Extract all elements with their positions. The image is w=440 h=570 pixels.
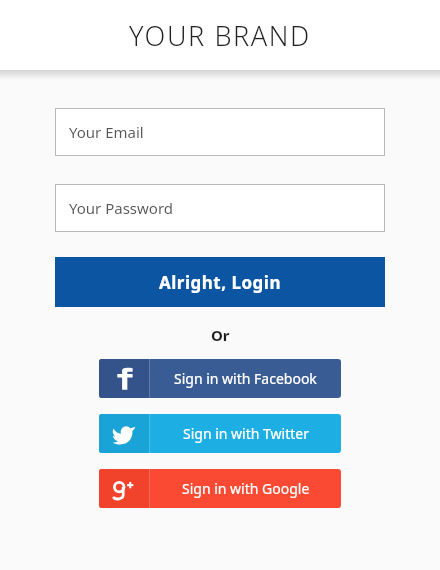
staticText: YOUR BRAND: [129, 17, 311, 54]
staticText: Sign in with Google: [182, 479, 310, 498]
button[interactable]: Sign in with Twitter: [99, 414, 341, 453]
staticText: Sign in with Facebook: [174, 369, 317, 388]
staticText: Alright, Login: [159, 271, 281, 294]
button[interactable]: Your Password: [55, 184, 385, 232]
staticText: Your Password: [69, 198, 174, 218]
button[interactable]: Sign in with Facebook: [99, 359, 341, 398]
staticText: Or: [211, 325, 230, 345]
button[interactable]: Your Email: [55, 108, 385, 156]
staticText: Sign in with Twitter: [183, 424, 309, 443]
button[interactable]: Alright, Login: [55, 257, 385, 307]
staticText: Your Email: [69, 122, 144, 142]
button[interactable]: Sign in with Google: [99, 469, 341, 508]
